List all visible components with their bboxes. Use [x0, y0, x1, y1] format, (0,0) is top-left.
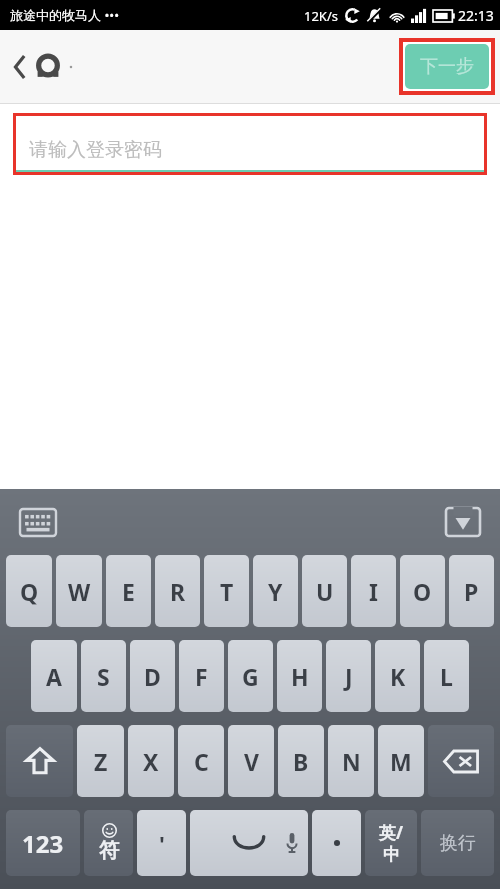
- button[interactable]: G: [228, 640, 273, 712]
- button[interactable]: H: [277, 640, 322, 712]
- staticText: E: [122, 576, 135, 607]
- staticText: 123: [22, 827, 64, 860]
- staticText: M: [390, 746, 412, 777]
- staticText: A: [46, 661, 62, 692]
- button[interactable]: T: [204, 555, 249, 627]
- staticText: 12K/s: [304, 7, 338, 25]
- other: Enter: [421, 810, 494, 876]
- staticText: I: [369, 576, 378, 607]
- button[interactable]: 请输入登录密码: [16, 116, 484, 172]
- staticText: 下一步: [420, 55, 474, 78]
- staticText: 英/: [379, 821, 404, 844]
- button[interactable]: L: [424, 640, 469, 712]
- button[interactable]: M: [378, 725, 424, 797]
- button[interactable]: R: [155, 555, 200, 627]
- button[interactable]: A: [31, 640, 77, 712]
- other: Backspace: [443, 749, 479, 774]
- staticText: Y: [268, 576, 283, 607]
- button[interactable]: S: [81, 640, 126, 712]
- staticText: X: [143, 746, 159, 777]
- button[interactable]: ': [137, 810, 186, 876]
- staticText: W: [68, 576, 91, 607]
- staticText: O: [413, 576, 432, 607]
- button[interactable]: X: [128, 725, 174, 797]
- button[interactable]: Y: [253, 555, 298, 627]
- staticText: V: [244, 746, 259, 777]
- staticText: J: [345, 661, 353, 692]
- button[interactable]: F: [179, 640, 224, 712]
- staticText: F: [195, 661, 208, 692]
- button[interactable]: O: [400, 555, 445, 627]
- staticText: C: [194, 746, 209, 777]
- button[interactable]: 符: [84, 810, 133, 876]
- button[interactable]: J: [326, 640, 371, 712]
- staticText: L: [440, 661, 453, 692]
- button[interactable]: 123: [6, 810, 80, 876]
- staticText: ': [159, 828, 165, 858]
- button[interactable]: Hide keyboard: [446, 508, 480, 536]
- staticText: 中: [383, 844, 400, 865]
- staticText: Q: [20, 576, 39, 607]
- other: Space: [190, 810, 308, 876]
- button[interactable]: Enter: [421, 810, 494, 876]
- button[interactable]: Space: [190, 810, 308, 876]
- other: Period: [333, 839, 341, 847]
- button[interactable]: W: [56, 555, 102, 627]
- button[interactable]: 下一步: [405, 44, 489, 89]
- button[interactable]: K: [375, 640, 420, 712]
- staticText: Z: [94, 746, 108, 777]
- button[interactable]: C: [178, 725, 224, 797]
- staticText: R: [170, 576, 186, 607]
- staticText: 请输入登录密码: [29, 138, 162, 162]
- staticText: G: [242, 661, 259, 692]
- staticText: K: [390, 661, 406, 692]
- staticText: N: [342, 746, 361, 777]
- staticText: T: [220, 576, 234, 607]
- staticText: S: [97, 661, 110, 692]
- button[interactable]: Back: [0, 44, 83, 90]
- button[interactable]: D: [130, 640, 175, 712]
- staticText: P: [464, 576, 479, 607]
- button[interactable]: N: [328, 725, 374, 797]
- button[interactable]: V: [228, 725, 274, 797]
- button[interactable]: Shift: [6, 725, 73, 797]
- button[interactable]: Q: [6, 555, 52, 627]
- staticText: B: [293, 746, 309, 777]
- button[interactable]: Period: [312, 810, 361, 876]
- button[interactable]: Z: [77, 725, 124, 797]
- button[interactable]: I: [351, 555, 396, 627]
- button[interactable]: U: [302, 555, 347, 627]
- button[interactable]: Keyboard settings: [20, 509, 56, 536]
- button[interactable]: Backspace: [428, 725, 494, 797]
- other: Shift: [25, 747, 55, 775]
- button[interactable]: B: [278, 725, 324, 797]
- staticText: D: [144, 661, 161, 692]
- staticText: 换行: [440, 832, 476, 855]
- button[interactable]: E: [106, 555, 151, 627]
- staticText: U: [316, 576, 334, 607]
- staticText: 旅途中的牧马人 •••: [10, 6, 120, 24]
- staticText: 符: [99, 838, 119, 863]
- staticText: 22:13: [458, 6, 494, 25]
- button[interactable]: P: [449, 555, 494, 627]
- button[interactable]: 英/: [365, 810, 417, 876]
- staticText: H: [291, 661, 309, 692]
